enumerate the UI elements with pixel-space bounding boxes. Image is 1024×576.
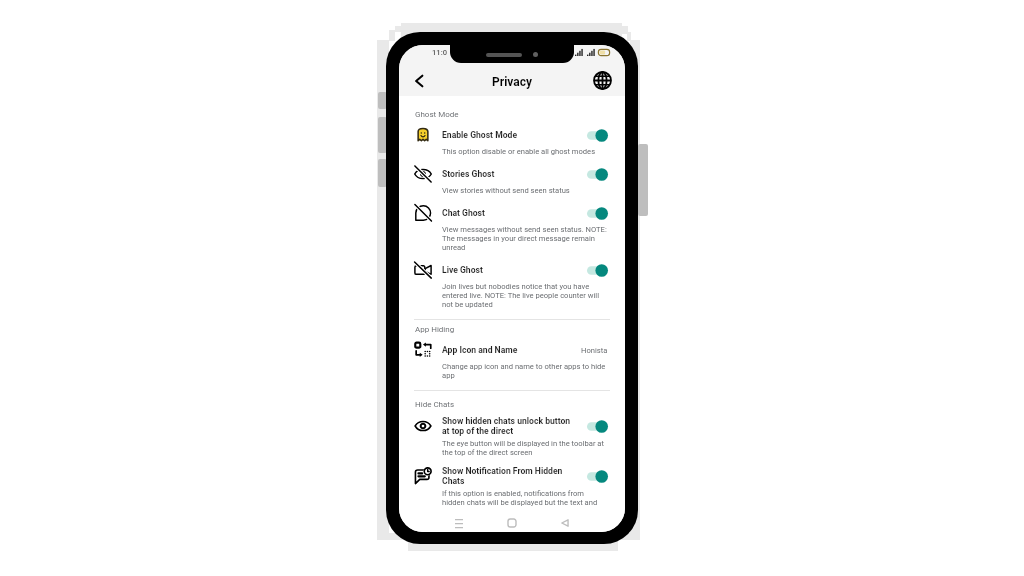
- button[interactable]: [587, 129, 608, 142]
- button[interactable]: Back: [408, 70, 430, 92]
- button[interactable]: Recents: [440, 515, 477, 531]
- staticText: Enable Ghost Mode: [442, 130, 518, 140]
- staticText: 11:0: [432, 48, 447, 57]
- staticText: App Hiding: [415, 325, 455, 334]
- button[interactable]: Language: [591, 69, 613, 91]
- button[interactable]: App Icon and Name: [399, 336, 625, 384]
- staticText: Show Notification From Hidden Chats: [442, 466, 579, 486]
- button[interactable]: [587, 420, 608, 433]
- button[interactable]: Enable Ghost Mode: [399, 121, 625, 160]
- staticText: View messages without send seen status. …: [442, 225, 608, 252]
- staticText: Live Ghost: [442, 265, 483, 275]
- staticText: Change app icon and name to other apps t…: [442, 362, 608, 380]
- staticText: Stories Ghost: [442, 169, 495, 179]
- button[interactable]: [587, 470, 608, 483]
- staticText: Hide Chats: [415, 400, 455, 409]
- staticText: Chat Ghost: [442, 208, 485, 218]
- staticText: Ghost Mode: [415, 110, 459, 119]
- button[interactable]: Home: [493, 515, 530, 531]
- staticText: Show hidden chats unlock button at top o…: [442, 416, 579, 436]
- button[interactable]: Show hidden chats unlock button at top o…: [399, 411, 625, 461]
- button[interactable]: Show Notification From Hidden Chats: [399, 461, 625, 511]
- button[interactable]: Stories Ghost: [399, 160, 625, 199]
- button[interactable]: [587, 168, 608, 181]
- staticText: The eye button will be displayed in the …: [442, 439, 608, 457]
- staticText: Privacy: [492, 75, 533, 89]
- button[interactable]: Back: [546, 515, 583, 531]
- staticText: Join lives but nobodies notice that you …: [442, 282, 608, 309]
- button[interactable]: [587, 207, 608, 220]
- button[interactable]: Chat Ghost: [399, 199, 625, 256]
- button[interactable]: [587, 264, 608, 277]
- staticText: View stories without send seen status: [442, 186, 608, 195]
- staticText: If this option is enabled, notifications…: [442, 489, 608, 507]
- button[interactable]: Live Ghost: [399, 256, 625, 313]
- staticText: Honista: [581, 346, 608, 355]
- staticText: App Icon and Name: [442, 345, 518, 355]
- staticText: This option disable or enable all ghost …: [442, 147, 608, 156]
